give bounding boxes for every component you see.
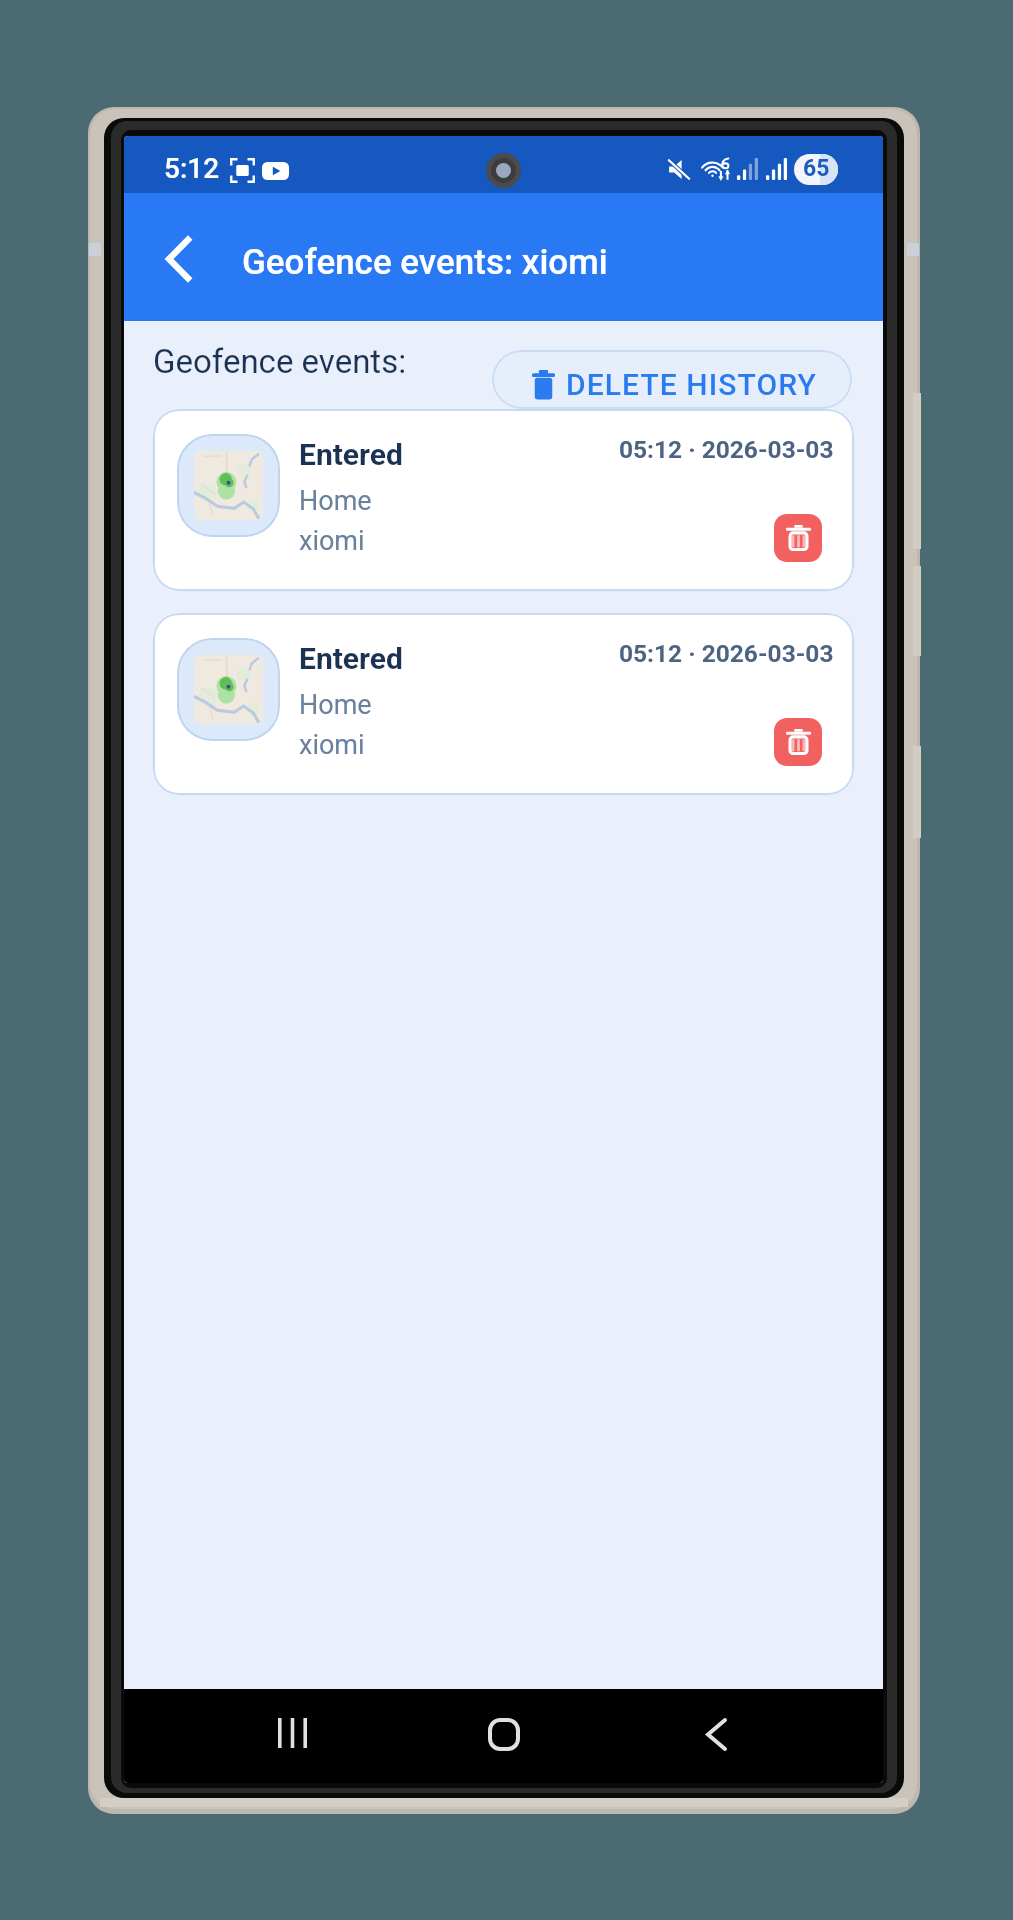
staticText: Entered (299, 437, 403, 472)
button[interactable]: Back (682, 1700, 750, 1768)
staticText: 65 (803, 155, 830, 182)
button[interactable]: Back (139, 220, 217, 298)
staticText: Home (299, 485, 372, 517)
staticText: DELETE HISTORY (566, 367, 818, 402)
staticText: 05:12 · 2026-03-03 (619, 435, 834, 464)
staticText: xiomi (299, 525, 365, 557)
staticText: 5:12 (164, 152, 220, 185)
staticText: Geofence events: xiomi (242, 242, 608, 283)
staticText: 05:12 · 2026-03-03 (619, 639, 834, 668)
staticText: Geofence events: (153, 342, 407, 381)
button[interactable]: Delete event (774, 718, 822, 766)
button[interactable]: Home (470, 1700, 538, 1768)
button[interactable]: Recents (258, 1699, 326, 1767)
button[interactable]: Entered (153, 409, 854, 591)
staticText: Entered (299, 641, 403, 676)
button[interactable]: DELETE HISTORY (492, 350, 852, 409)
button[interactable]: Entered (153, 613, 854, 795)
button[interactable]: Delete event (774, 514, 822, 562)
staticText: xiomi (299, 729, 365, 761)
staticText: Home (299, 689, 372, 721)
